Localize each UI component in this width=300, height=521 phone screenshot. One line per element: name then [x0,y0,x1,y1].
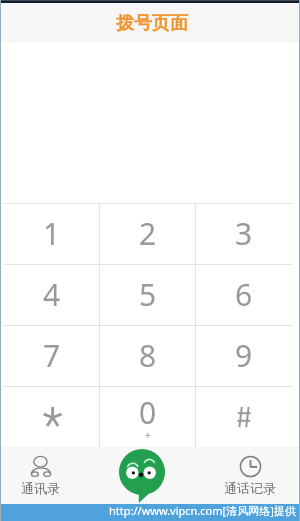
staticText: 1 [43,213,61,254]
button[interactable]: 2 [100,203,196,264]
button[interactable]: 4 [4,264,100,325]
staticText: 拨号页面 [116,12,188,35]
other: 通话记录 [240,456,261,477]
staticText: 3 [235,213,253,254]
staticText: 通讯录 [21,480,60,496]
button[interactable] [4,386,100,447]
button[interactable]: 通讯录 [5,450,75,500]
button[interactable]: 拨号 [119,449,165,503]
staticText: 6 [235,274,253,315]
button[interactable]: 3 [196,203,292,264]
staticText: http://www.vipcn.com[清风网络]提供 [109,503,296,518]
button[interactable]: 1 [4,203,100,264]
button[interactable]: 通话记录 [215,450,285,500]
button[interactable]: 0 [100,386,196,447]
button[interactable]: 7 [4,325,100,386]
staticText: 2 [139,213,157,254]
button[interactable] [196,386,292,447]
other: 通讯录 [31,456,51,477]
staticText: 通话记录 [224,480,276,496]
staticText: + [145,428,151,442]
staticText: 9 [235,335,253,376]
button[interactable]: 5 [100,264,196,325]
staticText: 0 [139,392,157,433]
staticText: 5 [139,274,157,315]
button[interactable]: 8 [100,325,196,386]
staticText: 7 [43,335,61,376]
button[interactable]: 9 [196,325,292,386]
button[interactable]: 6 [196,264,292,325]
staticText: 4 [43,274,61,315]
staticText: 8 [139,335,157,376]
